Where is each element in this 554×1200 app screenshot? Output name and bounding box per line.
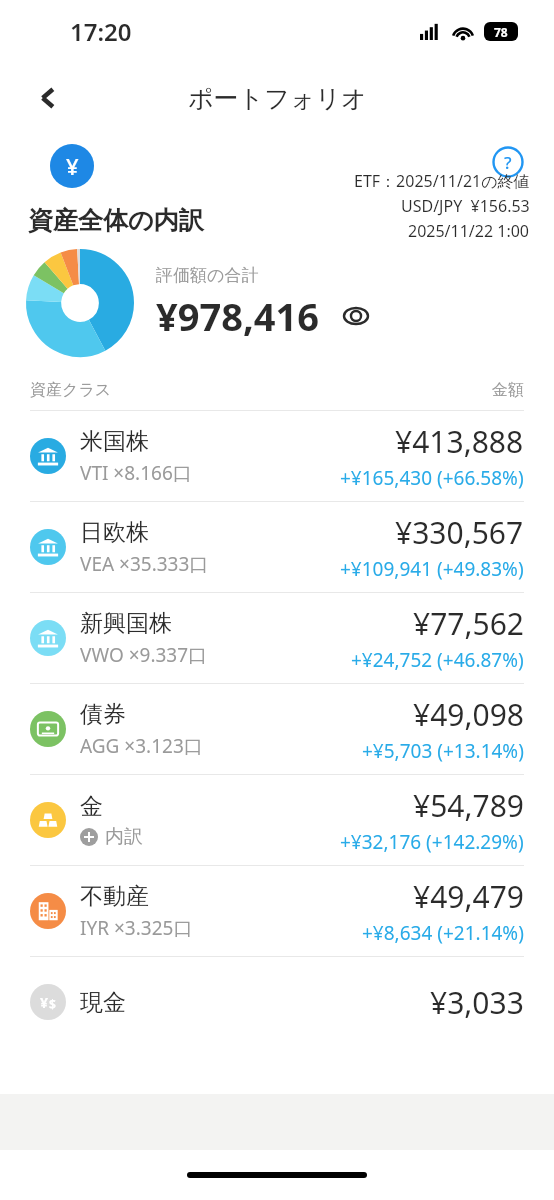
staticText: 17:20 (70, 15, 132, 48)
staticText: +¥5,703 (+13.14%) (362, 738, 524, 764)
staticText: 不動産 (80, 882, 149, 911)
staticText: +¥32,176 (+142.29%) (340, 829, 524, 855)
staticText: ¥330,567 (395, 512, 524, 553)
button[interactable]: Help (486, 140, 530, 184)
button[interactable]: Hide amount (339, 299, 373, 333)
staticText: 資産全体の内訳 (28, 205, 204, 236)
staticText: VEA ×35.333口 (80, 551, 209, 577)
staticText: $ (49, 996, 56, 1012)
staticText: VWO ×9.337口 (80, 642, 208, 668)
button[interactable]: 新興国株 (0, 593, 554, 683)
staticText: 内訳 (105, 825, 143, 849)
button[interactable]: 金 (0, 775, 554, 865)
staticText: $ (66, 151, 79, 181)
staticText: 日欧株 (80, 518, 149, 547)
staticText: 78 (494, 24, 508, 40)
button[interactable]: 不動産 (0, 866, 554, 956)
staticText: VTI ×8.166口 (80, 460, 192, 486)
staticText: 新興国株 (80, 609, 172, 638)
staticText: AGG ×3.123口 (80, 733, 203, 759)
staticText: USD/JPY ¥156.53 (401, 195, 530, 217)
staticText: ¥978,416 (156, 290, 319, 342)
staticText: ¥49,098 (413, 694, 524, 735)
staticText: ¥ (40, 993, 49, 1012)
staticText: ¥413,888 (395, 421, 524, 462)
staticText: +¥109,941 (+49.83%) (340, 556, 524, 582)
staticText: ¥3,033 (430, 982, 524, 1023)
staticText: +¥8,634 (+21.14%) (362, 920, 524, 946)
staticText: 現金 (80, 988, 126, 1017)
staticText: ¥77,562 (413, 603, 524, 644)
staticText: 金 (80, 792, 103, 821)
staticText: ¥ (66, 151, 79, 181)
staticText: ¥49,479 (413, 876, 524, 917)
button[interactable]: 米国株 (0, 411, 554, 501)
staticText: +¥24,752 (+46.87%) (351, 647, 524, 673)
staticText: 評価額の合計 (156, 265, 259, 286)
button[interactable]: ¥ (0, 957, 554, 1047)
staticText: ETF：2025/11/21の終値 (354, 170, 530, 192)
staticText: 金額 (492, 380, 524, 400)
button[interactable]: 日欧株 (0, 502, 554, 592)
staticText: ¥54,789 (413, 785, 524, 826)
staticText: 資産クラス (30, 380, 112, 400)
staticText: 2025/11/22 1:00 (408, 220, 530, 242)
button[interactable]: Currency toggle (28, 144, 116, 188)
staticText: +¥165,430 (+66.58%) (340, 465, 524, 491)
staticText: 米国株 (80, 427, 149, 456)
staticText: 債券 (80, 700, 126, 729)
button[interactable]: 債券 (0, 684, 554, 774)
staticText: ? (504, 151, 512, 174)
staticText: ポートフォリオ (188, 83, 367, 114)
staticText: IYR ×3.325口 (80, 915, 193, 941)
button[interactable]: Back (24, 74, 72, 122)
